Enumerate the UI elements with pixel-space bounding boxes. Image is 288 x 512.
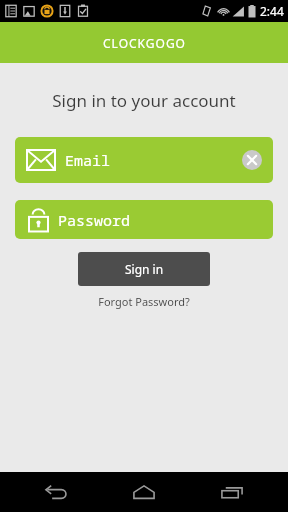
button[interactable]: Email: [15, 137, 273, 183]
button[interactable]: Password: [15, 200, 273, 239]
button[interactable]: Back: [24, 472, 88, 512]
staticText: Sign in: [125, 261, 164, 277]
button[interactable]: Clear email: [242, 150, 262, 170]
staticText: Email: [65, 150, 242, 170]
button[interactable]: Sign in: [78, 252, 210, 286]
button[interactable]: Forgot Password?: [0, 294, 288, 309]
staticText: 2:44: [260, 3, 284, 19]
staticText: CLOCKGOGO: [103, 35, 186, 51]
staticText: Sign in to your account: [0, 89, 288, 112]
staticText: Password: [58, 210, 131, 230]
button[interactable]: Recent apps: [200, 472, 264, 512]
button[interactable]: Home: [112, 472, 176, 512]
